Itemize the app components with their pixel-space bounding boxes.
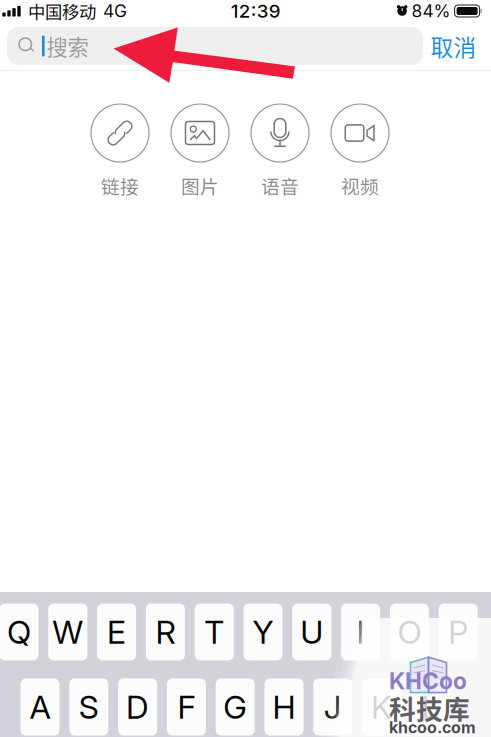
staticText: 搜索 (47, 31, 89, 61)
staticText: KHCoo (389, 667, 467, 695)
button[interactable]: 语音 (240, 104, 320, 199)
button[interactable]: P (439, 603, 478, 660)
button[interactable]: 视频 (320, 104, 400, 199)
staticText: L (421, 688, 439, 726)
staticText: 视频 (341, 172, 379, 199)
staticText: R (155, 613, 175, 651)
staticText: khcoo.com (389, 718, 476, 737)
staticText: 取消 (430, 30, 476, 62)
staticText: 中国移动 (28, 0, 96, 24)
button[interactable]: F (167, 678, 206, 735)
staticText: 语音 (261, 172, 299, 199)
button[interactable]: 取消 (423, 26, 484, 66)
button[interactable]: 链接 (80, 104, 160, 199)
staticText: P (448, 613, 468, 651)
button[interactable]: L (411, 678, 450, 735)
staticText: 84% (412, 0, 451, 21)
staticText: A (29, 688, 50, 726)
button[interactable]: T (195, 603, 234, 660)
button[interactable]: O (390, 603, 429, 660)
button[interactable]: 图片 (160, 104, 240, 199)
staticText: 4G (103, 0, 127, 21)
staticText: F (177, 688, 195, 726)
staticText: E (107, 613, 126, 651)
staticText: K (371, 688, 392, 726)
staticText: Y (252, 613, 273, 651)
staticText: D (126, 688, 149, 726)
staticText: 12:39 (231, 0, 281, 22)
button[interactable]: W (48, 603, 87, 660)
button[interactable]: U (292, 603, 331, 660)
staticText: J (324, 688, 342, 726)
staticText: Q (7, 613, 31, 651)
button[interactable]: K (362, 678, 401, 735)
staticText: W (52, 613, 83, 651)
staticText: 链接 (101, 172, 139, 199)
button[interactable]: G (216, 678, 255, 735)
button[interactable]: R (146, 603, 185, 660)
button[interactable]: A (20, 678, 59, 735)
staticText: T (204, 613, 224, 651)
button[interactable]: J (313, 678, 352, 735)
staticText: 图片 (181, 172, 219, 199)
button[interactable]: Y (243, 603, 282, 660)
button[interactable]: H (264, 678, 303, 735)
staticText: I (357, 613, 365, 651)
button[interactable]: E (97, 603, 136, 660)
staticText: G (223, 688, 247, 726)
button[interactable]: Q (0, 603, 38, 660)
staticText: 科技库 (389, 688, 470, 727)
staticText: O (397, 613, 421, 651)
button[interactable]: I (341, 603, 380, 660)
button[interactable]: D (118, 678, 157, 735)
staticText: S (79, 688, 99, 726)
button[interactable]: S (69, 678, 108, 735)
staticText: U (300, 613, 323, 651)
staticText: H (272, 688, 295, 726)
